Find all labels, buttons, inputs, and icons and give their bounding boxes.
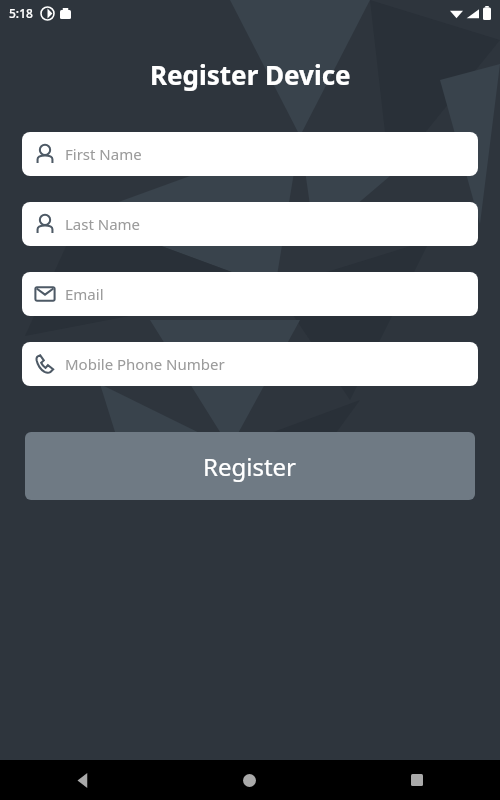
button[interactable]: Mobile Phone Number xyxy=(22,342,478,386)
staticText: First Name xyxy=(65,144,142,164)
staticText: Email xyxy=(65,284,104,304)
button[interactable]: Email xyxy=(22,272,478,316)
button[interactable]: Recent apps xyxy=(333,760,500,800)
staticText: Mobile Phone Number xyxy=(65,354,225,374)
staticText: Last Name xyxy=(65,214,141,234)
staticText: 5:18 xyxy=(9,5,33,21)
button[interactable]: Home xyxy=(166,760,333,800)
button[interactable]: Last Name xyxy=(22,202,478,246)
staticText: Register Device xyxy=(150,57,351,92)
button[interactable]: Register xyxy=(25,432,475,500)
button[interactable]: First Name xyxy=(22,132,478,176)
button[interactable]: Back xyxy=(0,760,166,800)
staticText: Register xyxy=(203,450,297,483)
